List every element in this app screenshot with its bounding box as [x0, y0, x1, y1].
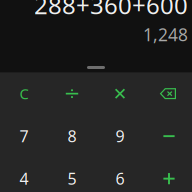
staticText: C: [19, 84, 28, 103]
button[interactable]: C: [0, 72, 48, 115]
staticText: 1,248: [143, 23, 188, 46]
staticText: 8: [67, 125, 76, 147]
button[interactable]: Delete: [144, 72, 192, 115]
button[interactable]: 6: [96, 157, 144, 192]
button[interactable]: Plus: [144, 157, 192, 192]
button[interactable]: 7: [0, 115, 48, 157]
button[interactable]: Divide: [48, 72, 96, 115]
staticText: 4: [19, 168, 28, 189]
button[interactable]: 8: [48, 115, 96, 157]
button[interactable]: 5: [48, 157, 96, 192]
button[interactable]: Minus: [144, 115, 192, 157]
staticText: 6: [115, 168, 124, 189]
staticText: 288+360+600: [34, 0, 188, 21]
staticText: 9: [115, 125, 124, 147]
button[interactable]: 9: [96, 115, 144, 157]
staticText: 7: [19, 125, 28, 147]
button[interactable]: Multiply: [96, 72, 144, 115]
staticText: 5: [67, 168, 76, 189]
button[interactable]: 4: [0, 157, 48, 192]
